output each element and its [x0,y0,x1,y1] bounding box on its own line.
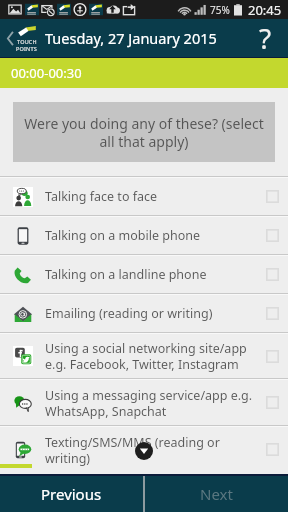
button[interactable]: Talking on a mobile phone [0,217,288,254]
button[interactable]: Next [145,476,288,512]
button[interactable]: Using a social networking site/app e.g. … [0,334,288,378]
staticText: 00:00-00:30 [11,64,82,82]
staticText: TOUCH [17,38,37,45]
button[interactable]: Using a messaging service/app e.g. Whats… [0,380,288,425]
staticText: Emailing (reading or writing) [45,305,255,322]
staticText: Texting/SMS/MMS (reading or writing) [45,434,255,466]
staticText: ? [259,19,272,57]
button[interactable]: Back to Touch Points [0,19,43,57]
staticText: Using a messaging service/app e.g. Whats… [45,387,255,419]
staticText: Using a social networking site/app e.g. … [45,340,255,372]
staticText: Tuesday, 27 January 2015 [45,28,217,48]
button[interactable]: Talking face to face [0,178,288,215]
staticText: Talking on a mobile phone [45,227,255,244]
staticText: 20:45 [248,1,282,19]
staticText: Talking face to face [45,188,255,205]
button[interactable]: Scroll down [135,442,153,460]
staticText: Talking on a landline phone [45,266,255,283]
button[interactable]: Texting/SMS/MMS (reading or writing) [0,427,288,472]
button[interactable]: Talking on a landline phone [0,256,288,293]
staticText: POINTS [16,45,37,52]
button[interactable]: Emailing (reading or writing) [0,295,288,332]
staticText: Were you doing any of these? (select all… [21,114,267,151]
staticText: Previous [41,484,102,504]
button[interactable]: Previous [0,476,143,512]
staticText: 75% [210,3,230,17]
staticText: Next [200,484,233,504]
button[interactable]: Help [243,19,288,57]
